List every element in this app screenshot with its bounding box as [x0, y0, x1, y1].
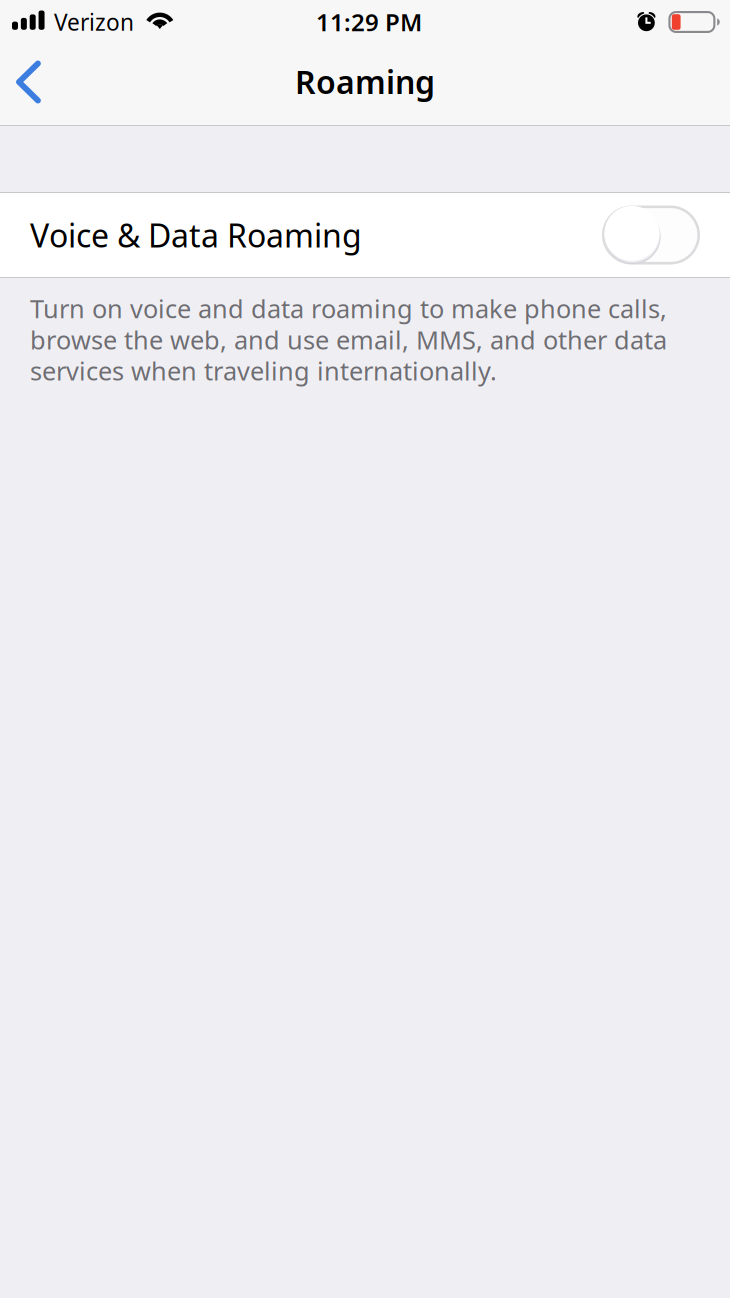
staticText: 11:29 PM	[316, 6, 422, 38]
staticText: Verizon	[54, 7, 134, 37]
button[interactable]: Voice & Data Roaming	[0, 193, 730, 277]
staticText: Roaming	[295, 60, 435, 103]
staticText: Turn on voice and data roaming to make p…	[30, 293, 667, 386]
button[interactable]: Voice & Data Roaming	[602, 205, 700, 264]
staticText: Voice & Data Roaming	[30, 213, 362, 257]
button[interactable]: Back	[0, 51, 61, 117]
